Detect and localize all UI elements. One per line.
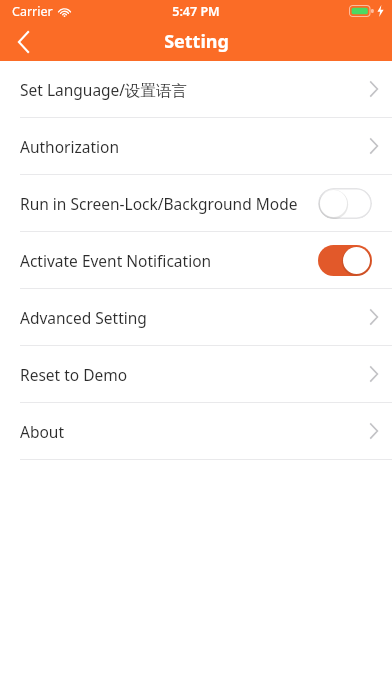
staticText: About bbox=[20, 421, 370, 442]
staticText: Run in Screen-Lock/Background Mode bbox=[20, 193, 318, 214]
staticText: Authorization bbox=[20, 136, 370, 157]
button[interactable]: Toggle on bbox=[318, 245, 372, 276]
staticText: 5:47 PM bbox=[172, 3, 220, 20]
button[interactable]: Reset to Demo bbox=[0, 346, 392, 402]
button[interactable]: About bbox=[0, 403, 392, 459]
staticText: Setting bbox=[164, 29, 229, 54]
button[interactable]: Authorization bbox=[0, 118, 392, 174]
staticText: Reset to Demo bbox=[20, 364, 370, 385]
staticText: Activate Event Notification bbox=[20, 250, 318, 271]
button[interactable]: Set Language/设置语言 bbox=[0, 61, 392, 117]
button[interactable]: Back bbox=[0, 22, 46, 61]
staticText: Carrier bbox=[12, 3, 53, 20]
staticText: Advanced Setting bbox=[20, 307, 370, 328]
button[interactable]: Advanced Setting bbox=[0, 289, 392, 345]
button[interactable]: Toggle off bbox=[318, 188, 372, 219]
staticText: Set Language/设置语言 bbox=[20, 79, 370, 100]
